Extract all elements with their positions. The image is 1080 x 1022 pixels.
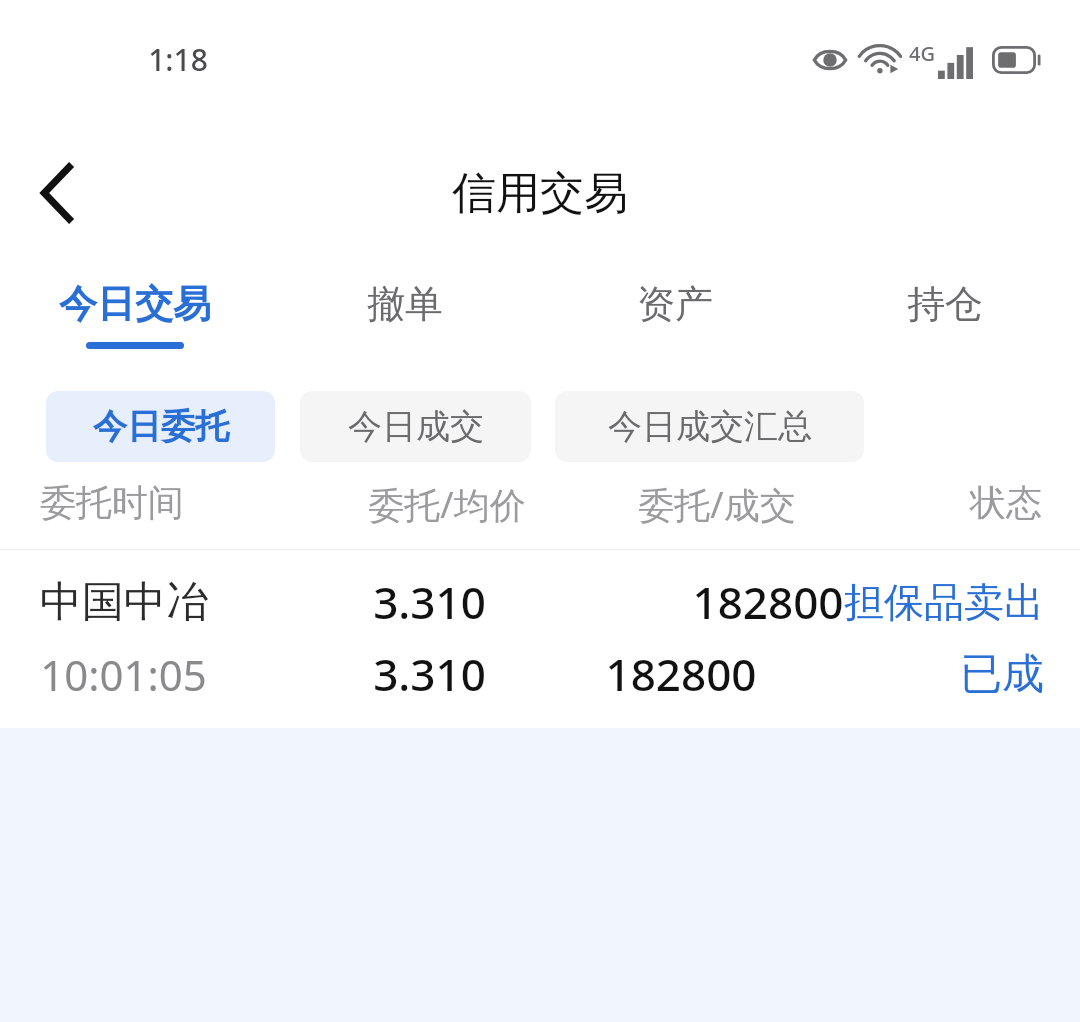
staticText: 状态 [970, 480, 1042, 525]
button[interactable]: 资产 [540, 268, 810, 357]
staticText: 1:18 [148, 39, 208, 80]
staticText: 担保品卖出 [844, 577, 1044, 627]
staticText: 已成 [960, 648, 1044, 701]
staticText: 今日成交 [348, 405, 484, 448]
staticText: 4G [909, 40, 935, 67]
staticText: 今日委托 [93, 405, 229, 448]
staticText: 委托/成交 [638, 480, 796, 529]
staticText: 182800 [692, 572, 844, 632]
staticText: 持仓 [907, 280, 983, 328]
staticText: 3.310 [373, 644, 486, 704]
button[interactable]: 持仓 [810, 268, 1080, 357]
button[interactable]: 中国中冶 [0, 550, 1080, 728]
staticText: 信用交易 [452, 166, 628, 221]
staticText: 今日成交汇总 [608, 405, 812, 448]
button[interactable]: Back [14, 150, 100, 236]
staticText: 撤单 [367, 280, 443, 328]
staticText: 182800 [605, 644, 757, 704]
staticText: 委托时间 [40, 480, 184, 525]
button[interactable]: 今日交易 [0, 268, 270, 357]
staticText: 10:01:05 [40, 646, 207, 703]
staticText: 今日交易 [59, 280, 211, 328]
button[interactable]: 今日成交汇总 [555, 391, 864, 462]
staticText: 资产 [637, 280, 713, 328]
staticText: 中国中冶 [40, 576, 208, 629]
button[interactable]: 今日委托 [46, 391, 275, 462]
button[interactable]: 撤单 [270, 268, 540, 357]
staticText: 3.310 [373, 572, 486, 632]
staticText: 委托/均价 [368, 480, 526, 529]
button[interactable]: 今日成交 [300, 391, 531, 462]
